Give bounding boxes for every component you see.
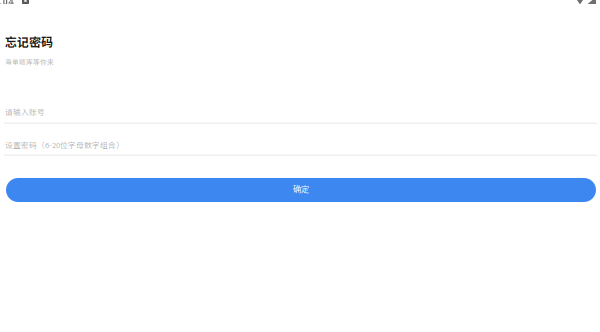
button[interactable]: 确定: [6, 178, 596, 202]
staticText: 设置密码（6-20位字母数字组合）: [5, 139, 124, 150]
staticText: 确定: [293, 182, 309, 195]
staticText: 海量题库等你来: [5, 57, 54, 66]
staticText: 忘记密码: [5, 33, 53, 50]
staticText: 请输入账号: [5, 106, 45, 117]
